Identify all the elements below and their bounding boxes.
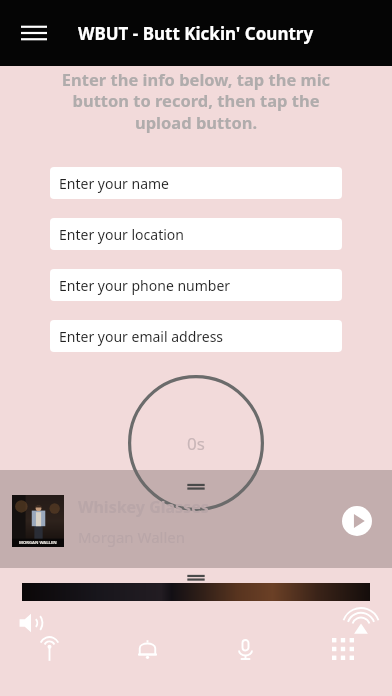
staticText: 0s <box>187 432 205 455</box>
button[interactable]: More <box>294 626 392 672</box>
button[interactable]: Open navigation menu <box>12 11 56 55</box>
staticText: Morgan Wallen <box>78 527 186 547</box>
button[interactable]: Enter your name <box>50 167 342 199</box>
button[interactable]: AirPlay <box>338 600 384 646</box>
staticText: Whiskey Glasses <box>78 496 209 518</box>
staticText: WBUT - Butt Kickin' Country <box>78 22 314 45</box>
staticText: Enter your email address <box>59 327 224 346</box>
staticText: Enter your name <box>59 174 169 193</box>
button[interactable]: Album art <box>12 495 64 547</box>
staticText: MORGAN WALLEN <box>19 540 57 546</box>
staticText: Enter the info below, tap the mic button… <box>46 68 346 134</box>
button[interactable]: Enter your email address <box>50 320 342 352</box>
button[interactable]: Enter your phone number <box>50 269 342 301</box>
button[interactable]: Play <box>334 498 380 544</box>
button[interactable]: Now playing banner <box>22 583 370 601</box>
button[interactable]: Record message <box>196 626 294 672</box>
staticText: Enter your location <box>59 225 184 244</box>
button[interactable]: Alerts <box>98 626 196 672</box>
button[interactable]: Enter your location <box>50 218 342 250</box>
button[interactable]: Live radio <box>0 626 98 672</box>
button[interactable]: Record <box>128 375 264 511</box>
staticText: Enter your phone number <box>59 276 231 295</box>
button[interactable]: Album art <box>0 490 392 552</box>
button[interactable]: Volume <box>8 600 54 646</box>
